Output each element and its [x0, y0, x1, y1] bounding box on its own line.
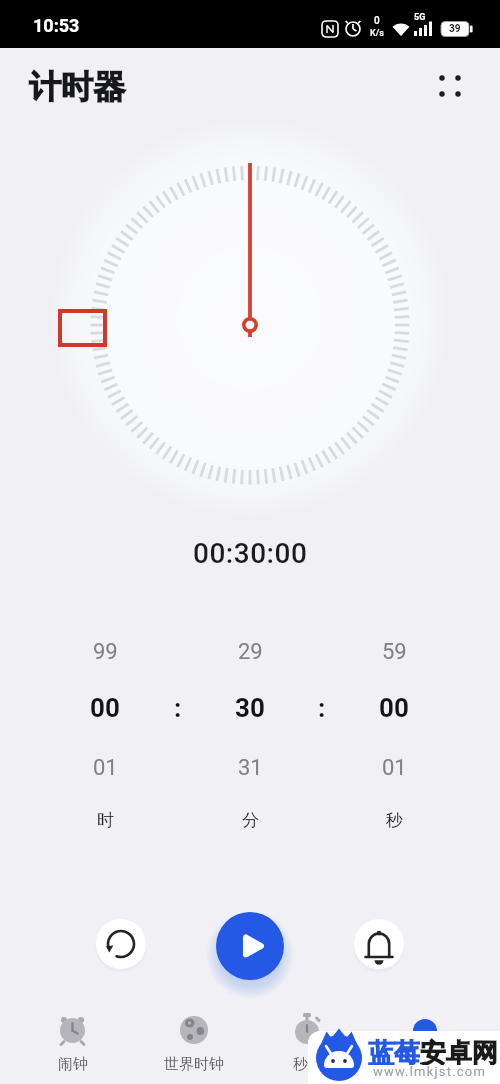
staticText: 秒 — [386, 810, 403, 831]
button[interactable]: 30 — [210, 686, 290, 730]
button[interactable] — [267, 1008, 348, 1084]
staticText: 世界时钟 — [164, 1055, 224, 1074]
staticText: 00 — [90, 693, 120, 723]
staticText: 闹钟 — [58, 1055, 88, 1074]
staticText: 蓝莓 — [368, 1037, 420, 1065]
staticText: 01 — [382, 755, 407, 781]
staticText: 29 — [238, 639, 263, 665]
staticText: 10:53 — [33, 15, 80, 36]
staticText: 30 — [235, 693, 265, 723]
button[interactable]: 00 — [65, 686, 145, 730]
staticText: 计时器 — [29, 67, 125, 107]
button[interactable] — [426, 62, 474, 110]
staticText: 59 — [382, 639, 407, 665]
staticText: 0 — [374, 15, 380, 27]
button[interactable] — [96, 919, 146, 969]
staticText: 安卓网 — [420, 1037, 498, 1065]
button[interactable] — [216, 912, 284, 980]
button[interactable] — [32, 1008, 113, 1084]
staticText: www.lmkjst.com — [373, 1064, 487, 1079]
staticText: : — [318, 693, 326, 723]
button[interactable] — [354, 919, 404, 969]
staticText: K/s — [370, 28, 384, 39]
staticText: : — [174, 693, 182, 723]
staticText: 5G — [414, 12, 426, 22]
staticText: 01 — [93, 755, 118, 781]
staticText: 99 — [93, 639, 118, 665]
button[interactable]: 00 — [354, 686, 434, 730]
staticText: 00 — [379, 693, 409, 723]
staticText: 秒表 — [293, 1055, 323, 1074]
staticText: 39 — [449, 23, 461, 35]
staticText: 31 — [238, 755, 263, 781]
button[interactable] — [153, 1008, 234, 1084]
staticText: 00:30:00 — [193, 537, 308, 570]
staticText: 时 — [97, 810, 114, 831]
staticText: 分 — [242, 810, 259, 831]
